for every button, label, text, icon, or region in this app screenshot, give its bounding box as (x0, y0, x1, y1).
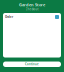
staticText: Garden Store (19, 2, 45, 7)
button[interactable]: Continue (3, 61, 61, 67)
staticText: Checkout (25, 7, 38, 11)
staticText: Order (5, 15, 13, 19)
staticText: Continue (25, 62, 39, 66)
